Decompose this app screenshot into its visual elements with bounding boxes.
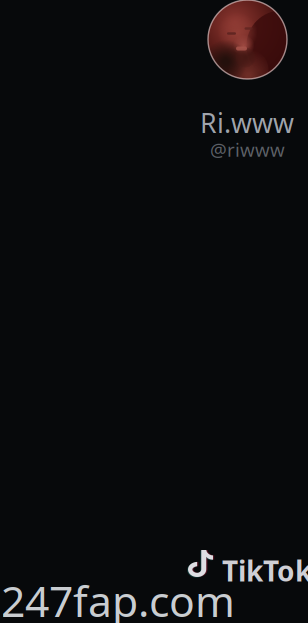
button[interactable]: Ri.www [200, 105, 294, 140]
staticText: TikTok [222, 552, 308, 589]
staticText: Ri.www [200, 105, 294, 140]
button[interactable]: @riwww [210, 137, 285, 162]
button[interactable]: Profile photo [208, 0, 287, 79]
staticText: @riwww [210, 137, 285, 162]
staticText: 247fap.com [1, 572, 235, 623]
